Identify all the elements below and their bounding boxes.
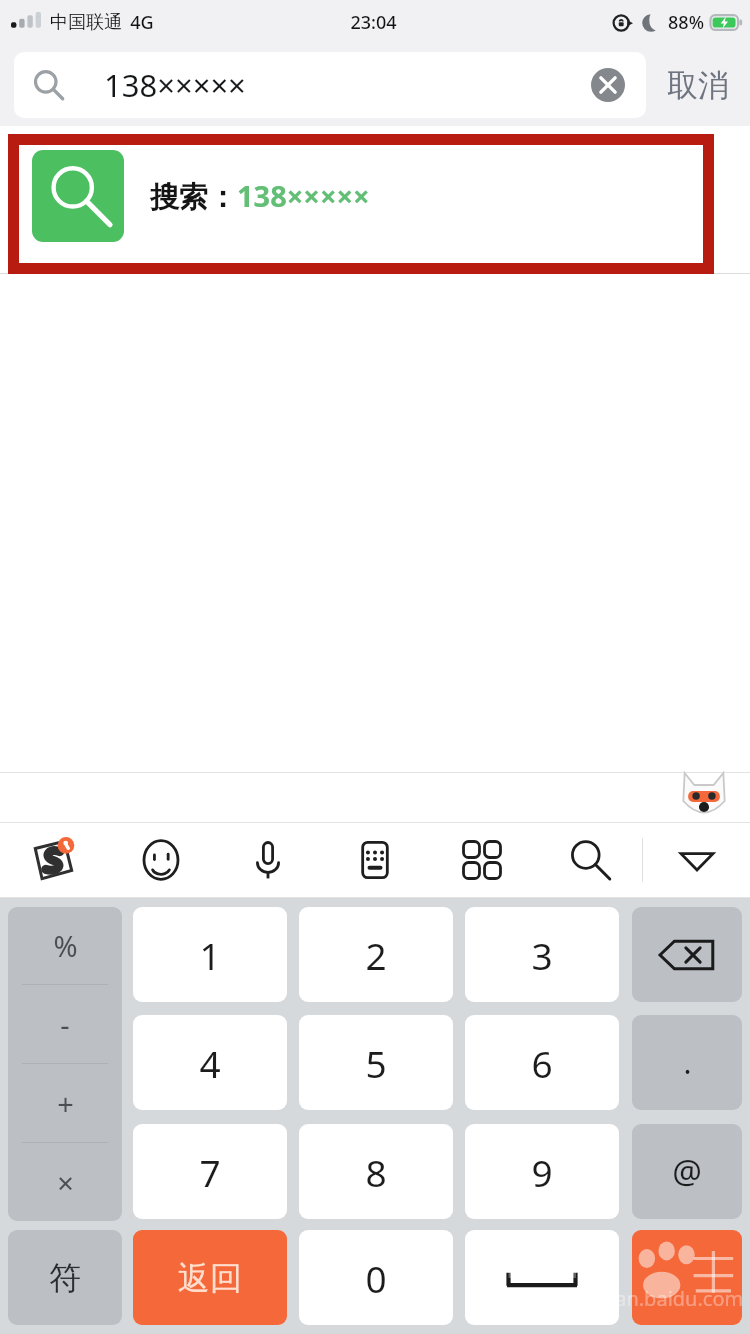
button[interactable]: 138××××× [14, 52, 646, 118]
button[interactable]: 0 [299, 1230, 453, 1325]
button[interactable]: 5 [299, 1015, 453, 1110]
button[interactable]: More tools [428, 822, 535, 898]
staticText: 符 [49, 1258, 81, 1298]
staticText: 7 [199, 1147, 221, 1197]
button[interactable]: 9 [465, 1124, 619, 1219]
button[interactable]: Search [535, 822, 642, 898]
button[interactable]: Symbols [8, 1230, 122, 1325]
staticText: 0 [365, 1253, 387, 1303]
button[interactable]: Hide keyboard [643, 822, 750, 898]
staticText: Baidu [506, 1243, 600, 1288]
button[interactable]: Voice input [214, 822, 321, 898]
staticText: 8 [365, 1147, 387, 1197]
staticText: 9 [531, 1147, 553, 1197]
button[interactable]: 搜索：138××××× [0, 126, 750, 266]
staticText: 2 [365, 930, 387, 980]
button[interactable]: Math operators [8, 907, 122, 1221]
button[interactable]: 8 [299, 1124, 453, 1219]
staticText: 搜索：138××××× [150, 176, 370, 216]
button[interactable]: 2 [299, 907, 453, 1002]
button[interactable]: 3 [465, 907, 619, 1002]
staticText: 中国联通 [50, 11, 122, 34]
staticText: @ [672, 1149, 702, 1194]
staticText: 88% [668, 10, 704, 35]
button[interactable]: Return [133, 1230, 287, 1325]
button[interactable]: Clear text [586, 63, 630, 107]
button[interactable]: Sogou [632, 1230, 742, 1325]
staticText: 3 [531, 930, 553, 980]
staticText: 4 [199, 1038, 221, 1088]
staticText: 23:04 [350, 10, 397, 35]
staticText: + [57, 1084, 74, 1123]
button[interactable]: Space [465, 1230, 619, 1325]
staticText: % [53, 926, 78, 965]
button[interactable]: 取消 [646, 44, 750, 126]
staticText: 5 [365, 1038, 387, 1088]
button[interactable]: 7 [133, 1124, 287, 1219]
button[interactable]: 6 [465, 1015, 619, 1110]
staticText: × [57, 1163, 74, 1202]
button[interactable]: Emoji [107, 822, 214, 898]
staticText: 返回 [178, 1258, 242, 1298]
staticText: - [60, 1005, 70, 1044]
staticText: 1 [199, 930, 221, 980]
staticText: 6 [531, 1038, 553, 1088]
button[interactable]: Backspace [632, 907, 742, 1002]
button[interactable]: At sign [632, 1124, 742, 1219]
button[interactable]: Sogou input method [0, 822, 107, 898]
staticText: 138××××× [104, 64, 246, 106]
button[interactable]: Keyboard layout [321, 822, 428, 898]
staticText: jingyan.baidu.com [570, 1285, 744, 1312]
staticText: . [683, 1042, 692, 1083]
staticText: 取消 [667, 66, 729, 105]
button[interactable]: 1 [133, 907, 287, 1002]
staticText: 4G [130, 10, 154, 35]
button[interactable]: Period [632, 1015, 742, 1110]
button[interactable]: 4 [133, 1015, 287, 1110]
